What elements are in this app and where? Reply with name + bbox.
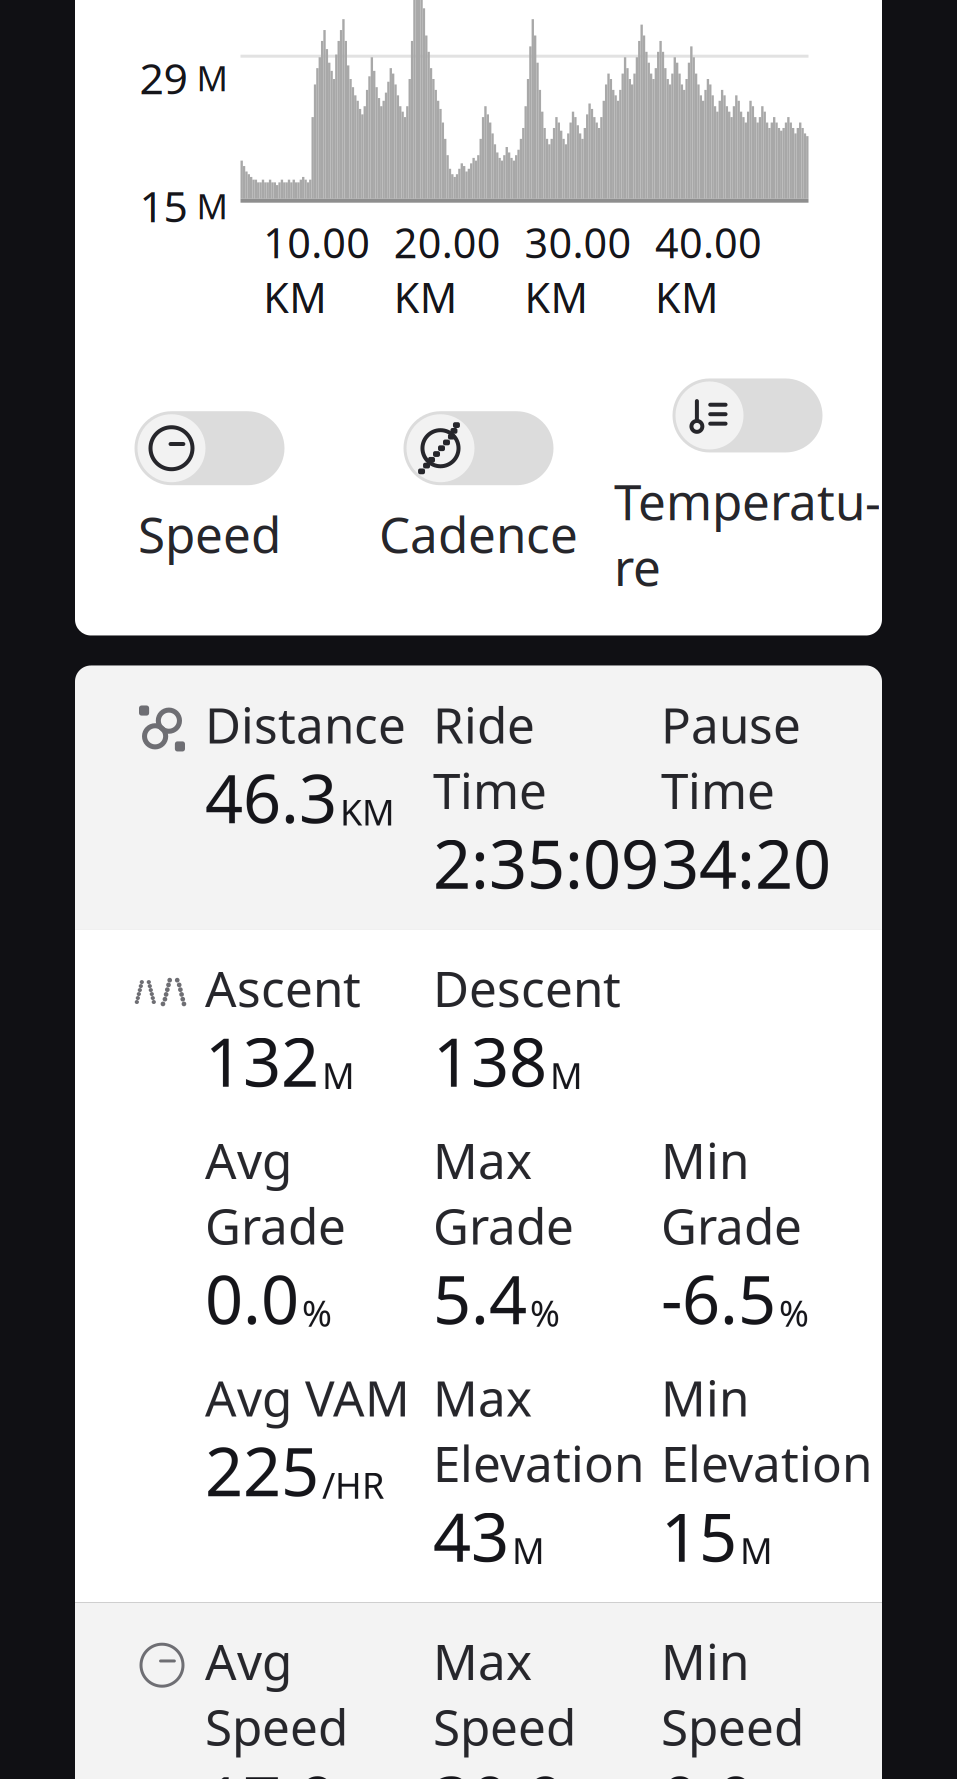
staticText: Distance (205, 691, 406, 757)
staticText: 138 (433, 1017, 547, 1105)
staticText: 15 (139, 177, 187, 234)
staticText: 30.9 (433, 1755, 565, 1779)
button[interactable]: Speed (134, 411, 284, 567)
staticText: M (196, 55, 227, 101)
staticText: M (322, 1051, 355, 1099)
staticText: Min Speed (661, 1628, 804, 1759)
staticText: 10.00 KM (263, 215, 370, 324)
staticText: 40.00 KM (655, 215, 762, 324)
staticText: Max Elevation (433, 1365, 644, 1496)
button[interactable]: Cadence (379, 411, 578, 567)
staticText: Cadence (379, 501, 578, 567)
staticText: 29 (139, 49, 187, 106)
staticText: 132 (205, 1017, 319, 1105)
staticText: 34:20 (661, 818, 831, 907)
staticText: 15 (661, 1492, 737, 1580)
staticText: Temperature (614, 468, 881, 599)
staticText: KM (340, 788, 395, 835)
staticText: % (779, 1289, 809, 1337)
staticText: 46.3 (205, 753, 337, 841)
staticText: Ascent (205, 955, 361, 1020)
staticText: Speed (138, 501, 281, 567)
staticText: Min Elevation (661, 1365, 872, 1496)
staticText: /HR (322, 1461, 384, 1509)
staticText: 2:35:09 (433, 818, 659, 907)
staticText: M (196, 183, 227, 229)
staticText: Descent (433, 955, 621, 1020)
staticText: Avg Grade (205, 1127, 346, 1258)
staticText: Max Speed (433, 1628, 576, 1759)
button[interactable]: Temperature (614, 378, 881, 599)
staticText: M (740, 1526, 773, 1574)
staticText: -6.5 (661, 1254, 776, 1343)
staticText: Max Grade (433, 1127, 574, 1258)
staticText: 225 (205, 1426, 319, 1515)
staticText: Avg Speed (205, 1628, 348, 1759)
staticText: 0.0 (205, 1254, 299, 1343)
staticText: 5.4 (433, 1254, 527, 1343)
staticText: Min Grade (661, 1127, 802, 1258)
staticText: Ride Time (433, 691, 547, 822)
staticText: 17.9 (205, 1755, 337, 1779)
staticText: Avg VAM (205, 1365, 410, 1430)
staticText: M (550, 1051, 583, 1099)
staticText: 30.00 KM (524, 215, 631, 324)
staticText: M (512, 1526, 545, 1574)
staticText: % (530, 1289, 560, 1337)
staticText: 0.0 (661, 1755, 755, 1779)
staticText: 43 (433, 1492, 509, 1580)
staticText: % (302, 1289, 332, 1337)
staticText: 20.00 KM (394, 215, 501, 324)
staticText: Pause Time (661, 691, 801, 822)
